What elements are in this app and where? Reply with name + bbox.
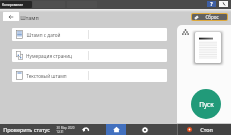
button[interactable]: Tree view [182,29,189,35]
button[interactable]: Копирование [0,1,32,8]
staticText: Проверить статус [3,126,50,133]
staticText: Штамп с датой [26,32,61,38]
staticText: Стоп [200,126,213,133]
button[interactable]: Текстовый штамп [12,69,167,82]
button[interactable]: Пуск [191,89,221,119]
staticText: Нумерация страниц [26,53,72,59]
button[interactable]: Back [3,12,19,21]
button[interactable]: Help [207,1,216,7]
button[interactable]: Phone [219,1,228,7]
staticText: ? [210,1,213,7]
staticText: Копирование [2,3,23,7]
staticText: 30 Мар 2020 [56,126,75,130]
button[interactable]: Settings [138,124,152,135]
button[interactable]: Preview [195,32,221,63]
button[interactable]: Проверить статус [0,124,53,135]
button[interactable]: Сброс [192,14,227,20]
button[interactable]: Home [106,124,126,135]
button[interactable]: Стоп [178,124,231,135]
staticText: Сброс [205,14,219,20]
button[interactable]: Undo [79,124,92,135]
button[interactable]: Нумерация страниц [12,49,167,62]
staticText: Штамп [20,14,39,21]
staticText: 12:31 [56,130,64,134]
staticText: Текстовый штамп [26,73,67,79]
button[interactable]: Штамп с датой [12,28,167,41]
staticText: Пуск [199,100,214,109]
